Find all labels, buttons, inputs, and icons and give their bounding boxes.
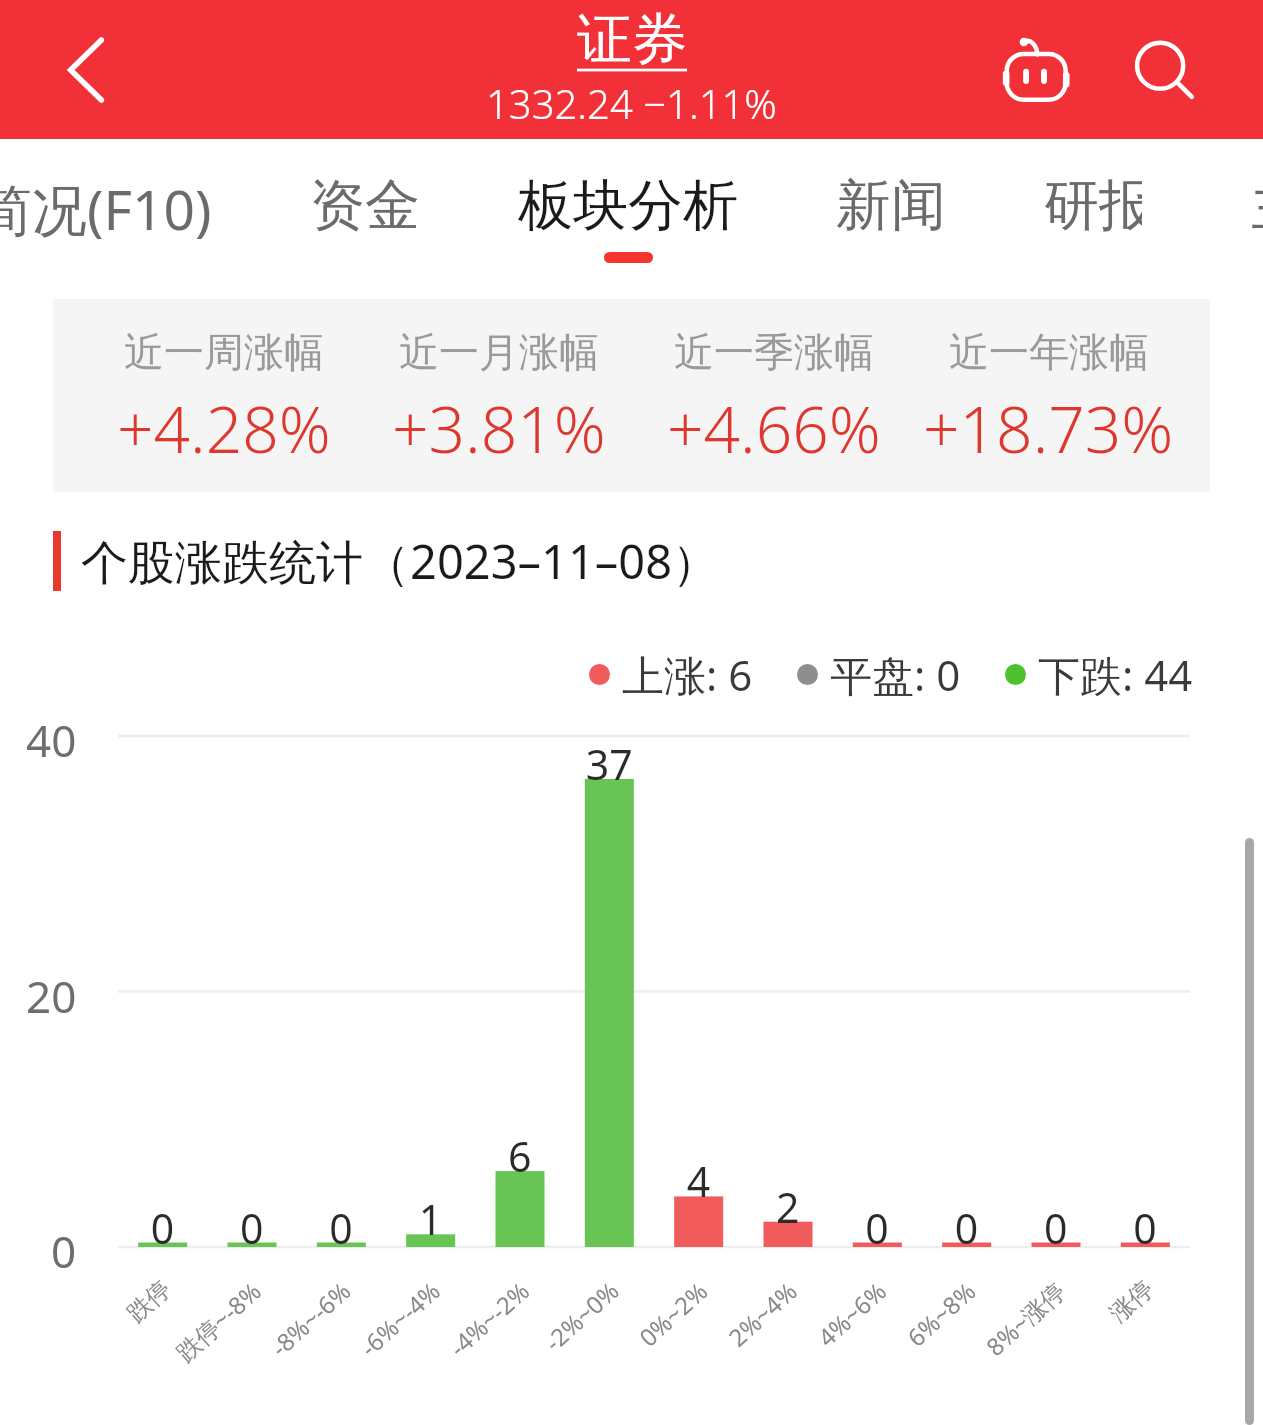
staticText: 板块分析 [518, 171, 738, 240]
staticText: 个股涨跌统计（2023–11–08） [81, 529, 720, 593]
staticText: 近一月涨幅 [399, 327, 599, 377]
staticText: 主力 [1251, 172, 1263, 241]
staticText: 简况(F10) [0, 171, 212, 246]
other: 个股涨跌分布柱状图 [0, 0, 1263, 1425]
button[interactable]: 平盘: 0 [797, 646, 961, 703]
staticText: 下跌: 44 [1038, 646, 1193, 703]
button[interactable]: 主力 [1251, 172, 1263, 241]
staticText: 近一年涨幅 [949, 327, 1149, 377]
button[interactable]: 简况(F10) [0, 139, 261, 258]
staticText: 研报 [1044, 171, 1142, 240]
button[interactable]: 研报 [995, 139, 1191, 252]
staticText: 近一季涨幅 [674, 327, 874, 377]
staticText: +4.28% [117, 385, 331, 472]
button[interactable]: 新闻 [787, 139, 995, 252]
staticText: 资金 [310, 171, 420, 240]
button[interactable]: 下跌: 44 [1005, 646, 1193, 703]
button[interactable]: 资金 [261, 139, 469, 252]
staticText: +3.81% [392, 385, 606, 472]
button[interactable]: AI assistant [989, 23, 1083, 117]
button[interactable]: 近一年涨幅 [911, 323, 1186, 468]
staticText: +4.66% [667, 385, 881, 472]
staticText: 新闻 [836, 171, 946, 240]
staticText: 近一周涨幅 [124, 327, 324, 377]
staticText: +18.73% [923, 385, 1174, 472]
button[interactable]: 近一季涨幅 [636, 323, 911, 468]
staticText: 上涨: 6 [622, 646, 753, 703]
staticText: 平盘: 0 [830, 646, 961, 703]
staticText: 证券 [577, 5, 687, 74]
button[interactable]: Back [46, 30, 126, 110]
button[interactable]: 上涨: 6 [589, 646, 753, 703]
button[interactable]: 板块分析 [469, 139, 787, 263]
staticText: 1332.24 −1.11% [486, 76, 777, 130]
button[interactable]: 近一月涨幅 [361, 323, 636, 468]
button[interactable]: 近一周涨幅 [86, 323, 361, 468]
button[interactable]: Search [1119, 23, 1213, 117]
